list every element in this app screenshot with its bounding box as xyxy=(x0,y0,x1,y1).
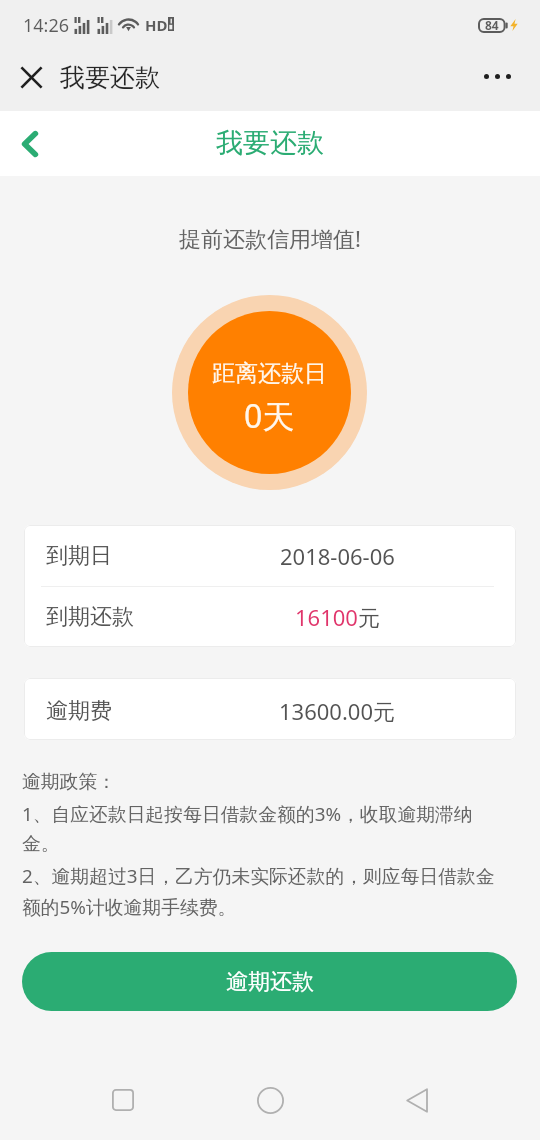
staticText: 2、逾期超过3日，乙方仍未实际还款的，则应每日借款金 xyxy=(22,863,495,889)
staticText: 额的5%计收逾期手续费。 xyxy=(22,894,237,920)
staticText: 距离还款日 xyxy=(212,359,327,388)
staticText: 我要还款 xyxy=(60,62,160,93)
staticText: 1、自应还款日起按每日借款金额的3%，收取逾期滞纳 xyxy=(22,801,473,827)
button[interactable]: Recent apps xyxy=(93,1070,153,1130)
staticText: 逾期还款 xyxy=(226,968,314,996)
button[interactable]: 到期还款 xyxy=(24,587,516,647)
staticText: 16100元 xyxy=(295,602,380,632)
button[interactable]: Close xyxy=(5,44,57,110)
staticText: 我要还款 xyxy=(216,126,324,160)
button[interactable]: More options xyxy=(469,43,525,109)
staticText: 金。 xyxy=(22,832,60,856)
staticText: 84 xyxy=(485,17,499,33)
staticText: HD xyxy=(145,15,168,35)
button[interactable]: Back xyxy=(4,118,56,170)
button[interactable]: 到期日 xyxy=(24,525,516,586)
button[interactable]: 逾期还款 xyxy=(22,952,517,1011)
staticText: 逾期政策： xyxy=(22,770,116,794)
staticText: 到期还款 xyxy=(46,603,134,631)
staticText: 13600.00元 xyxy=(279,696,395,726)
button[interactable]: Back xyxy=(387,1070,447,1130)
staticText: 14:26 xyxy=(23,13,70,37)
staticText: 提前还款信用增值! xyxy=(0,223,540,253)
button[interactable]: Home xyxy=(240,1070,300,1130)
staticText: 2018-06-06 xyxy=(280,541,395,571)
staticText: 逾期费 xyxy=(46,697,112,725)
staticText: 到期日 xyxy=(46,542,112,570)
button[interactable]: 逾期费 xyxy=(24,680,516,740)
staticText: 0天 xyxy=(244,394,295,438)
